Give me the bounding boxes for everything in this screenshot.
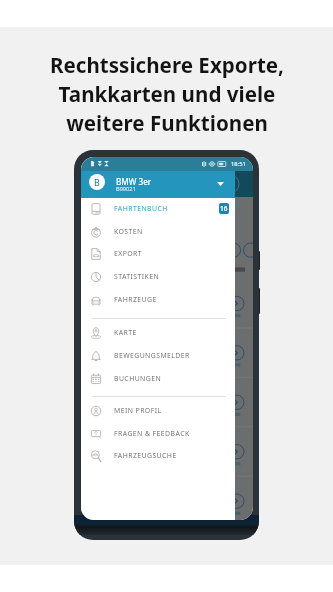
button[interactable]: Fahrzeug wechseln — [213, 176, 228, 191]
staticText: 18:51 — [231, 160, 246, 168]
staticText: MEIN PROFIL — [114, 406, 162, 415]
button[interactable]: BEWEGUNGSMELDER — [81, 344, 235, 367]
staticText: EXPORT — [114, 249, 143, 258]
staticText: FAHRTENBUCH — [114, 204, 168, 213]
staticText: BEWEGUNGSMELDER — [114, 351, 190, 360]
staticText: B — [94, 176, 100, 188]
button[interactable]: EXPORT — [81, 242, 235, 265]
button[interactable]: FAHRTENBUCH — [81, 197, 235, 220]
staticText: FRAGEN & FEEDBACK — [114, 429, 190, 438]
button[interactable]: STATISTIKEN — [81, 265, 235, 288]
button[interactable]: MEIN PROFIL — [81, 399, 235, 422]
button[interactable]: BUCHUNGEN — [81, 367, 235, 390]
staticText: BUCHUNGEN — [114, 374, 162, 383]
button[interactable]: KOSTEN — [81, 220, 235, 243]
staticText: BMW 3er — [116, 176, 152, 187]
staticText: B99021 — [116, 185, 136, 193]
button[interactable]: FRAGEN & FEEDBACK — [81, 422, 235, 445]
button[interactable]: FAHRZEUGSUCHE — [81, 444, 235, 467]
staticText: Rechtssichere Exporte, Tankkarten und vi… — [50, 51, 284, 137]
staticText: KARTE — [114, 328, 137, 337]
staticText: 16 — [220, 204, 228, 213]
button[interactable]: KARTE — [81, 321, 235, 344]
button[interactable]: FAHRZEUGE — [81, 288, 235, 311]
staticText: KOSTEN — [114, 227, 143, 236]
staticText: FAHRZEUGSUCHE — [114, 451, 177, 460]
staticText: FAHRZEUGE — [114, 295, 157, 304]
staticText: STATISTIKEN — [114, 272, 160, 281]
